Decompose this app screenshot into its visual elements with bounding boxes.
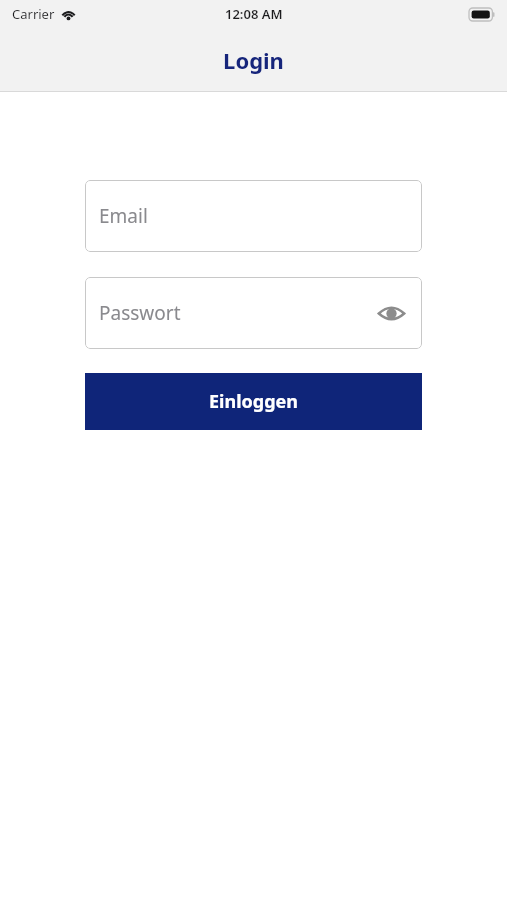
staticText: Passwort <box>99 300 181 326</box>
button[interactable]: Show password <box>374 296 408 330</box>
staticText: Login <box>223 45 284 75</box>
staticText: Carrier <box>12 5 55 23</box>
staticText: Email <box>99 203 148 229</box>
button[interactable]: Einloggen <box>85 373 422 430</box>
staticText: Einloggen <box>209 389 298 414</box>
button[interactable]: Passwort <box>85 277 422 349</box>
button[interactable]: Email <box>85 180 422 252</box>
staticText: 12:08 AM <box>225 5 283 23</box>
